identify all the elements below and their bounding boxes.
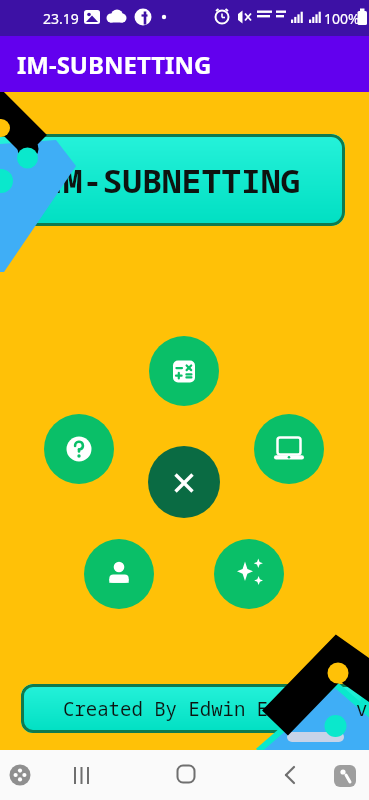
staticText: IM-SUBNETTING	[17, 48, 212, 81]
button[interactable]	[334, 765, 357, 788]
button[interactable]: Created By Edwin Ernawan v1.0	[21, 684, 369, 733]
button[interactable]	[9, 764, 31, 786]
button[interactable]	[148, 446, 220, 518]
button[interactable]	[176, 764, 196, 784]
button[interactable]	[280, 764, 300, 784]
button[interactable]	[44, 414, 114, 484]
button[interactable]	[70, 762, 96, 788]
button[interactable]	[254, 414, 324, 484]
staticText: IM-SUBNETTING	[43, 158, 301, 203]
button[interactable]	[214, 539, 284, 609]
staticText: Created By Edwin Ernawan v1.0	[63, 696, 369, 722]
button[interactable]	[149, 336, 219, 406]
staticText: v	[356, 696, 368, 722]
button[interactable]	[84, 539, 154, 609]
staticText: 100%	[324, 9, 360, 28]
staticText: 23.19	[43, 9, 79, 28]
